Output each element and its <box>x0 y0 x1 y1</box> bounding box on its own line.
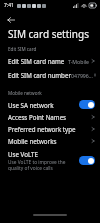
staticText: Edit SIM card <box>8 46 37 52</box>
staticText: Edit SIM card number <box>8 71 71 79</box>
staticText: Preferred network type <box>8 125 76 133</box>
staticText: T-Mobile <box>68 58 89 65</box>
button[interactable]: Toggle on <box>79 100 95 109</box>
staticText: Edit SIM card name <box>8 57 65 65</box>
staticText: SIM card settings <box>8 27 89 41</box>
button[interactable]: Use VoLTE <box>0 147 100 174</box>
staticText: Use SA network <box>8 101 54 109</box>
button[interactable]: Back <box>4 13 17 26</box>
button[interactable]: Edit SIM card number <box>0 68 100 82</box>
staticText: Mobile networks <box>8 137 57 145</box>
button[interactable]: Toggle on <box>79 156 95 165</box>
staticText: Use VoLTE to improve the quality of voic… <box>8 159 76 171</box>
button[interactable]: Mobile networks <box>0 135 100 147</box>
button[interactable]: Access Point Names <box>0 111 100 123</box>
button[interactable]: Use SA network <box>0 98 100 111</box>
staticText: 0479962234 <box>71 72 95 79</box>
button[interactable]: Edit SIM card name <box>0 54 100 68</box>
staticText: 7:41 <box>4 2 14 9</box>
staticText: Use VoLTE <box>8 150 38 158</box>
button[interactable]: Preferred network type <box>0 123 100 135</box>
staticText: Mobile network <box>8 90 42 96</box>
staticText: Access Point Names <box>8 113 67 121</box>
